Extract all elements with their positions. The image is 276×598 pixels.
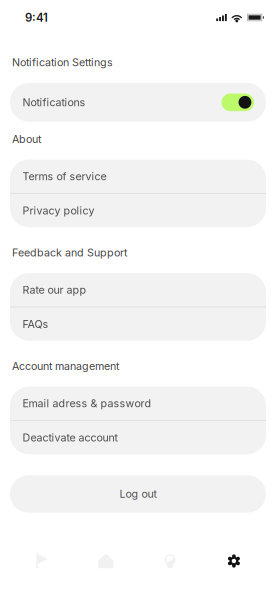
- button[interactable]: Log out: [10, 475, 266, 513]
- staticText: Privacy policy: [22, 204, 94, 217]
- staticText: About: [12, 133, 41, 146]
- button[interactable]: FAQs: [10, 307, 266, 341]
- staticText: Email adress & password: [22, 397, 151, 410]
- button[interactable]: Rate our app: [10, 273, 266, 306]
- staticText: Account management: [12, 360, 119, 373]
- staticText: FAQs: [22, 318, 48, 330]
- button[interactable]: Email adress & password: [10, 387, 266, 420]
- button[interactable]: Notifications: [10, 83, 266, 122]
- staticText: 9:41: [25, 11, 48, 24]
- staticText: Log out: [119, 487, 156, 500]
- staticText: Rate our app: [22, 283, 86, 296]
- staticText: Terms of service: [22, 170, 106, 183]
- staticText: Feedback and Support: [12, 246, 127, 259]
- button[interactable]: Settings: [202, 536, 266, 586]
- button[interactable]: Home: [74, 536, 138, 586]
- button[interactable]: Deactivate account: [10, 421, 266, 454]
- button[interactable]: Terms of service: [10, 160, 266, 193]
- staticText: Notification Settings: [12, 56, 113, 69]
- button[interactable]: Privacy policy: [10, 194, 266, 227]
- staticText: Deactivate account: [22, 431, 117, 444]
- staticText: Notifications: [22, 96, 85, 109]
